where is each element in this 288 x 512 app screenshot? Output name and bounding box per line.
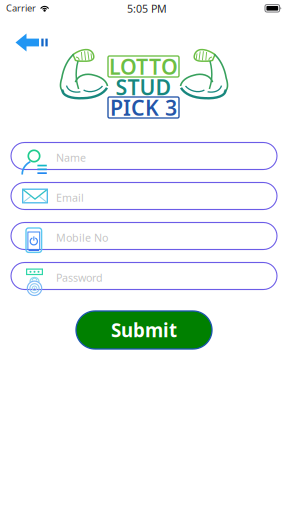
button[interactable]: Password — [11, 262, 277, 289]
button[interactable]: Name — [11, 142, 277, 169]
button[interactable]: Submit — [76, 311, 212, 349]
button[interactable]: Email — [11, 182, 277, 209]
staticText: Mobile No — [56, 230, 108, 245]
staticText: 5:05 PM — [127, 1, 167, 16]
staticText: Carrier — [6, 2, 36, 14]
staticText: Submit — [111, 318, 177, 342]
staticText: LOTTO — [109, 52, 178, 81]
staticText: Name — [56, 150, 86, 165]
staticText: Email — [56, 190, 84, 205]
staticText: Password — [56, 270, 103, 285]
staticText: STUD — [115, 73, 171, 101]
staticText: PICK 3 — [110, 93, 177, 122]
button[interactable]: Mobile No — [11, 222, 277, 249]
button[interactable]: Back — [9, 29, 54, 56]
